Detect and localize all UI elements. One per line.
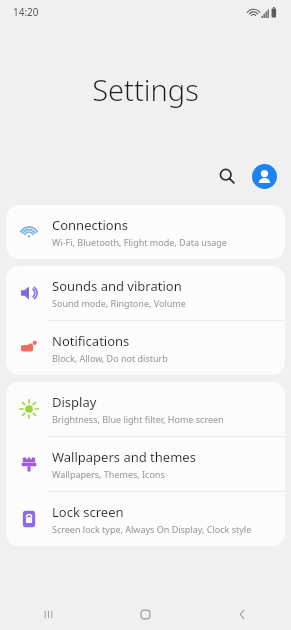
staticText: Screen lock type, Always On Display, Clo… xyxy=(52,523,252,535)
button[interactable]: Connections xyxy=(6,205,285,259)
staticText: Settings xyxy=(0,70,291,109)
staticText: Sounds and vibration xyxy=(52,277,182,295)
staticText: Notifications xyxy=(52,332,130,350)
button[interactable]: Account xyxy=(252,164,277,189)
staticText: Brightness, Blue light filter, Home scre… xyxy=(52,413,224,425)
staticText: Sound mode, Ringtone, Volume xyxy=(52,297,186,309)
button[interactable]: Notifications xyxy=(6,321,285,375)
staticText: Wallpapers, Themes, Icons xyxy=(52,468,165,480)
staticText: Lock screen xyxy=(52,503,124,521)
staticText: Wallpapers and themes xyxy=(52,448,196,466)
staticText: Wi-Fi, Bluetooth, Flight mode, Data usag… xyxy=(52,236,227,248)
button[interactable]: Recents xyxy=(0,598,97,630)
staticText: Block, Allow, Do not disturb xyxy=(52,352,168,364)
button[interactable]: Sounds and vibration xyxy=(6,266,285,320)
button[interactable]: Back xyxy=(194,598,291,630)
button[interactable]: Wallpapers and themes xyxy=(6,437,285,491)
staticText: 14:20 xyxy=(13,5,39,19)
button[interactable]: Home xyxy=(97,598,194,630)
button[interactable]: Search xyxy=(210,159,244,193)
button[interactable]: Display xyxy=(6,382,285,436)
staticText: Display xyxy=(52,393,97,411)
button[interactable]: Lock screen xyxy=(6,492,285,546)
staticText: Connections xyxy=(52,216,128,234)
